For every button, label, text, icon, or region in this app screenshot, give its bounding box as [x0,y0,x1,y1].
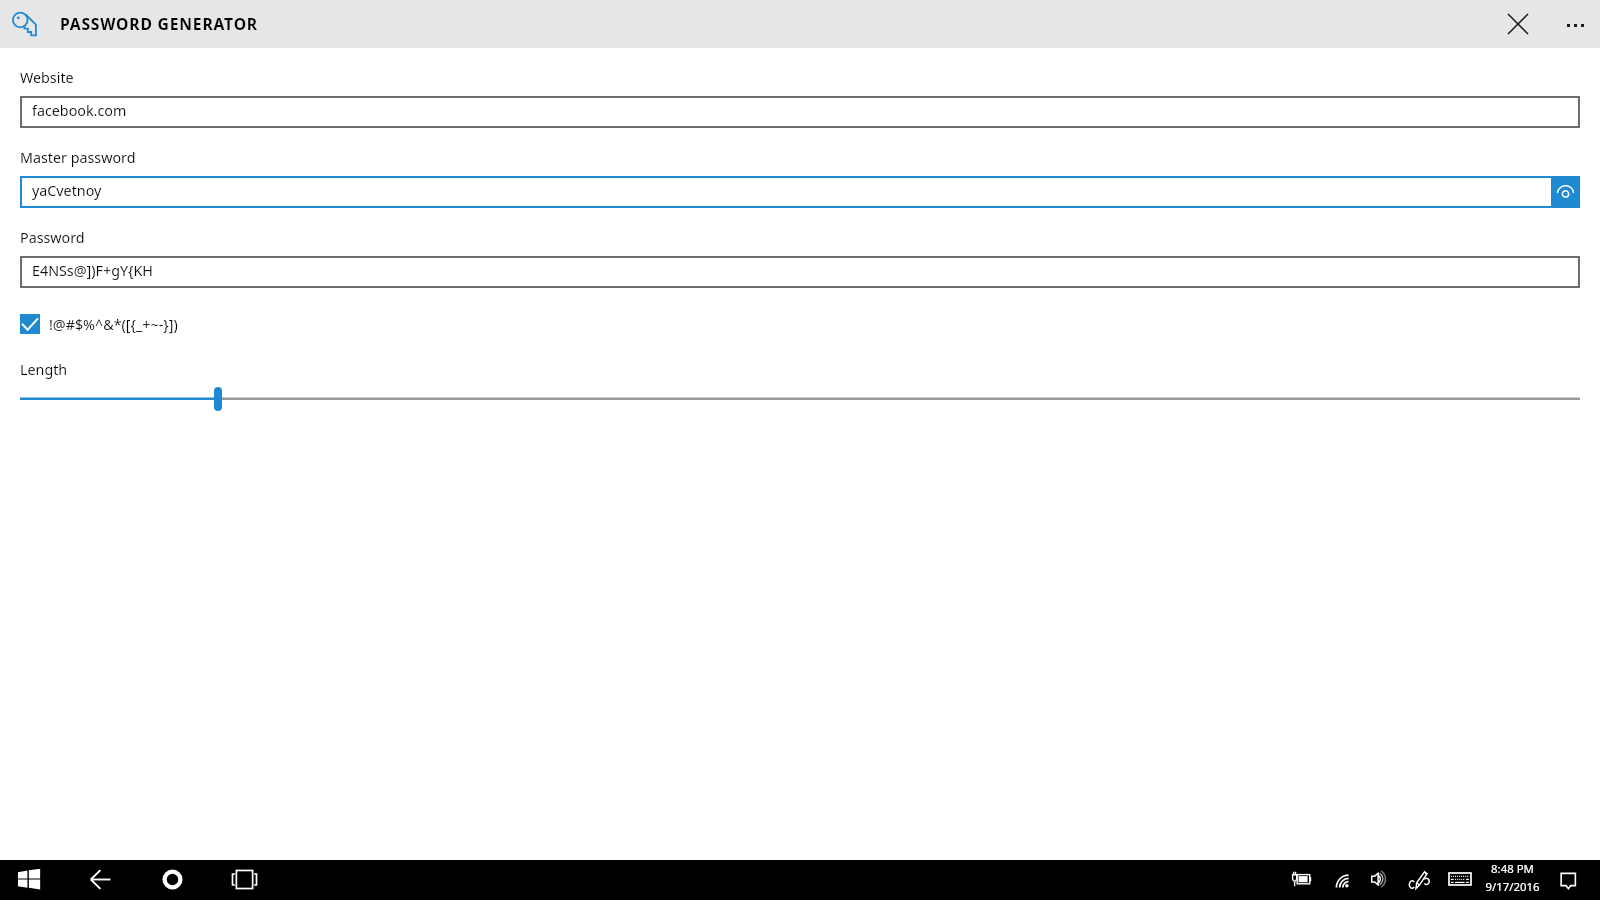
button[interactable]: 8:48 PM [1476,861,1548,893]
button[interactable]: Cortana [152,859,192,899]
staticText: !@#$%^&*([{_+~-}]) [49,315,178,334]
staticText: Length [20,360,68,379]
staticText: 8:48 PM [1491,861,1534,877]
button[interactable]: Volume [1359,859,1399,899]
button[interactable]: Wi-Fi [1320,859,1360,899]
button[interactable]: More options [1551,0,1599,48]
staticText: Master password [20,148,136,167]
button[interactable]: Pen [1399,859,1439,899]
button[interactable]: Start [9,859,49,899]
button[interactable]: Reveal password [1551,176,1580,208]
staticText: PASSWORD GENERATOR [60,13,258,34]
button[interactable]: Close [1494,0,1542,48]
button[interactable]: E4NSs@])F+gY{KH [20,256,1580,288]
button[interactable]: Back [80,859,120,899]
button[interactable]: Action center [1547,859,1587,899]
button[interactable]: Length slider [214,387,222,411]
button[interactable]: facebook.com [20,96,1580,128]
staticText: yaCvetnoy [32,181,102,200]
button[interactable]: Keyboard [1440,859,1480,899]
staticText: Website [20,68,74,87]
staticText: facebook.com [32,101,127,120]
button[interactable]: yaCvetnoy [20,176,1580,208]
staticText: E4NSs@])F+gY{KH [32,261,153,280]
button[interactable]: Task view [224,859,264,899]
staticText: 9/17/2016 [1485,879,1540,895]
button[interactable]: !@#$%^&*([{_+~-}]) [20,314,178,334]
button[interactable]: Battery charging [1280,859,1320,899]
staticText: Password [20,228,85,247]
